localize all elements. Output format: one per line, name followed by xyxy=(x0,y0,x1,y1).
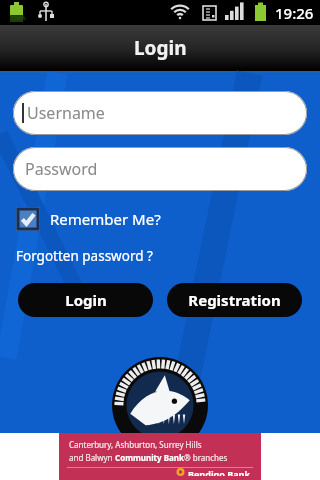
staticText: Canterbury, Ashburton, Surrey Hills xyxy=(69,439,202,450)
staticText: Login xyxy=(65,290,107,310)
staticText: Forgotten password ? xyxy=(16,247,153,265)
staticText: 100% xyxy=(10,14,26,22)
button[interactable]: Username xyxy=(13,91,307,135)
other: Camberwell Junior club logo xyxy=(112,357,208,453)
button[interactable]: Login xyxy=(18,283,153,317)
staticText: Username xyxy=(27,102,105,124)
staticText: Login xyxy=(134,35,187,61)
staticText: Remember Me? xyxy=(50,209,161,229)
button[interactable]: Canterbury, Ashburton, Surrey Hills xyxy=(0,433,320,480)
staticText: 19:26 xyxy=(275,3,314,23)
button[interactable]: Forgotten password ? xyxy=(16,247,153,265)
staticText: Community Bank xyxy=(115,452,184,463)
staticText: Bendigo Bank xyxy=(188,468,251,476)
staticText: and Balwyn xyxy=(69,452,115,463)
staticText: ® branches xyxy=(184,452,228,463)
button[interactable]: Password xyxy=(13,147,307,191)
staticText: Registration xyxy=(188,290,281,310)
staticText: Password xyxy=(25,158,98,180)
button[interactable]: Registration xyxy=(167,283,302,317)
button[interactable]: Remember Me? xyxy=(16,207,161,231)
